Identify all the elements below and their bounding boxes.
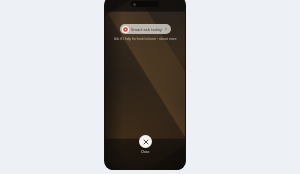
button[interactable]: Close: [135, 133, 156, 156]
staticText: Ask if I help for best to learn • about …: [114, 37, 177, 41]
other: Open suggestion: [164, 27, 168, 31]
staticText: Smart ask today: [131, 27, 162, 32]
button[interactable]: Smart ask today: [120, 24, 171, 34]
staticText: Close: [141, 150, 150, 154]
